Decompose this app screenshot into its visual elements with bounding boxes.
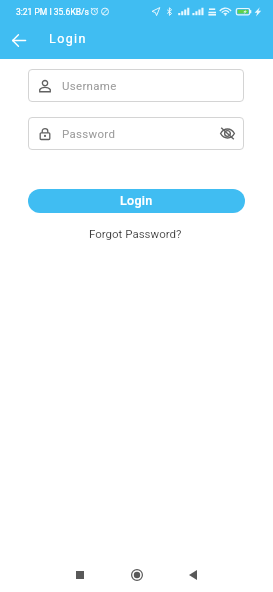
- button[interactable]: Password: [28, 117, 244, 150]
- staticText: Username: [62, 79, 117, 92]
- button[interactable]: Back: [7, 28, 31, 52]
- button[interactable]: Back: [175, 557, 211, 592]
- button[interactable]: Home: [119, 557, 155, 592]
- button[interactable]: Username: [28, 69, 244, 102]
- staticText: Login: [120, 193, 153, 208]
- button[interactable]: Forgot Password?: [89, 227, 182, 240]
- staticText: Password: [62, 127, 116, 140]
- button[interactable]: Login: [28, 189, 245, 213]
- staticText: 3:21 PM I 35.6KB/s: [16, 7, 89, 17]
- staticText: Login: [49, 31, 87, 46]
- button[interactable]: Recent apps: [62, 557, 98, 592]
